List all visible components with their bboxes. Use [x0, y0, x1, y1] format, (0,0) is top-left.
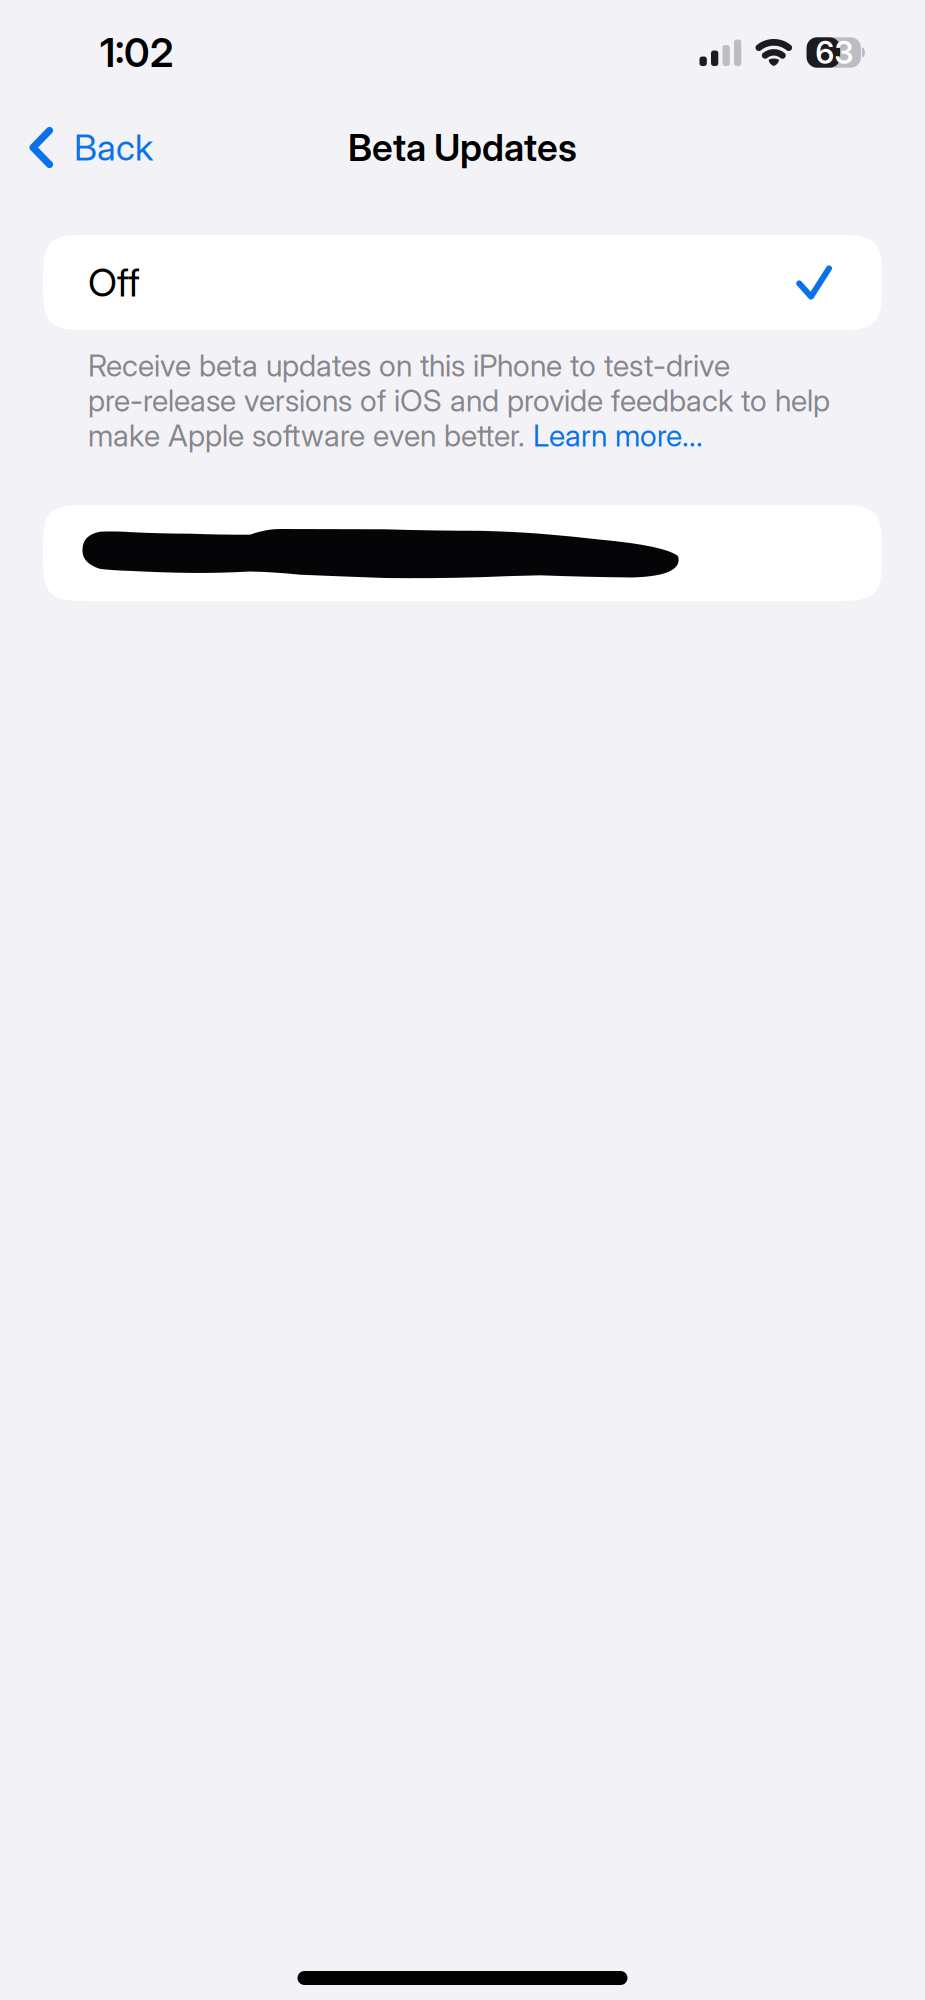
- button[interactable]: Redacted beta program option: [43, 505, 882, 601]
- button[interactable]: Learn more...: [533, 417, 703, 454]
- button[interactable]: Back: [0, 105, 167, 190]
- staticText: 63: [816, 34, 854, 71]
- staticText: Receive beta updates on this iPhone to t…: [88, 347, 730, 384]
- staticText: Learn more...: [533, 417, 703, 454]
- staticText: Off: [88, 259, 140, 306]
- staticText: Back: [74, 126, 153, 169]
- staticText: pre-release versions of iOS and provide …: [88, 382, 830, 419]
- staticText: make Apple software even better.: [88, 417, 533, 454]
- button[interactable]: Off: [43, 235, 882, 330]
- staticText: 1:02: [100, 28, 173, 77]
- staticText: Beta Updates: [348, 125, 577, 170]
